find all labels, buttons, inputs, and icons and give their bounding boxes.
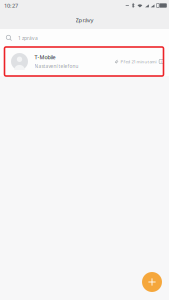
staticText: 1 zpráva (18, 35, 38, 41)
staticText: Zprávy (75, 16, 93, 24)
button[interactable]: 1 zpráva (0, 29, 169, 47)
button[interactable]: New message (142, 272, 162, 292)
staticText: Před 21 minutami (120, 59, 156, 64)
button[interactable]: T-Mobile (0, 47, 169, 76)
staticText: 10:27 (4, 2, 18, 9)
staticText: i (161, 59, 162, 64)
staticText: Nastavení telefonu (34, 63, 78, 69)
staticText: T-Mobile (34, 54, 55, 61)
